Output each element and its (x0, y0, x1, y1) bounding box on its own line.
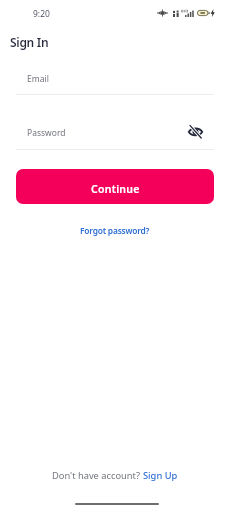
button[interactable]: Forgot password? (80, 225, 150, 236)
button[interactable]: Password (16, 122, 182, 149)
staticText: 9:20 (33, 8, 50, 20)
button[interactable]: Continue (16, 169, 214, 204)
staticText: Password (27, 127, 66, 139)
staticText: Email (27, 73, 49, 85)
button[interactable]: Sign Up (143, 469, 178, 482)
button[interactable]: Show password (182, 118, 208, 144)
button[interactable]: Email (16, 68, 214, 95)
staticText: Continue (91, 182, 140, 196)
staticText: Don't have account? (52, 469, 143, 482)
staticText: Sign In (10, 34, 49, 50)
